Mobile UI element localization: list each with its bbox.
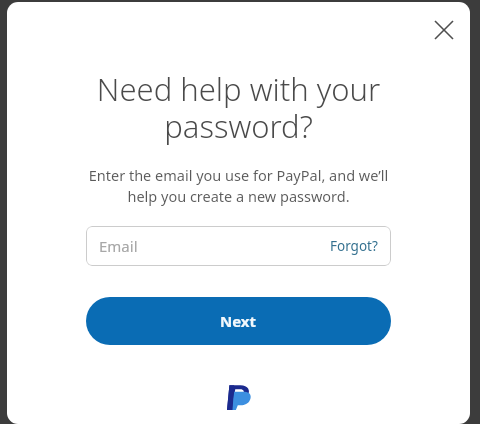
- staticText: Email: [99, 236, 138, 256]
- staticText: Enter the email you use for PayPal, and …: [27, 165, 450, 207]
- button[interactable]: Forgot?: [330, 237, 378, 255]
- button[interactable]: Email: [86, 226, 391, 266]
- staticText: Need help with your password?: [31, 68, 446, 147]
- button[interactable]: Next: [86, 297, 391, 345]
- button[interactable]: Close: [424, 10, 464, 50]
- staticText: Next: [220, 311, 257, 331]
- staticText: Forgot?: [330, 237, 378, 255]
